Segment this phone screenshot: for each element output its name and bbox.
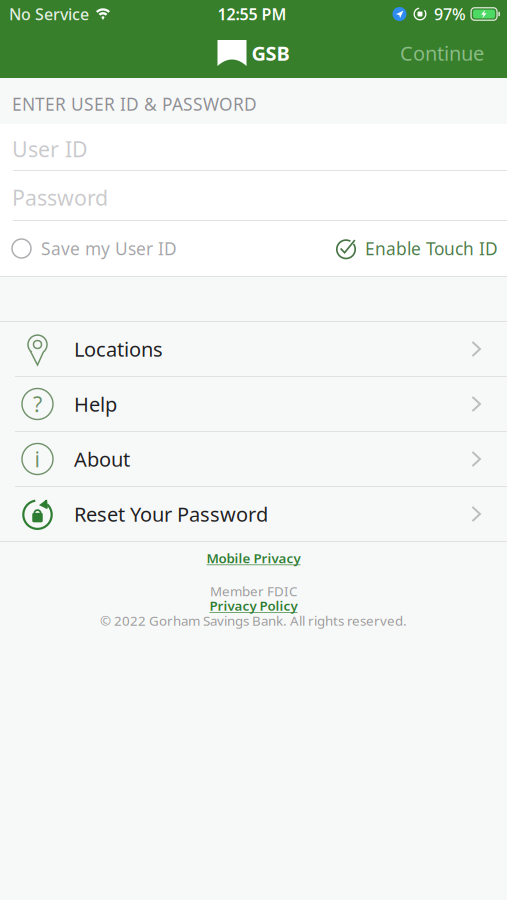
button[interactable]: Privacy Policy — [209, 598, 297, 613]
staticText: © 2022 Gorham Savings Bank. All rights r… — [100, 612, 407, 629]
staticText: Locations — [74, 336, 163, 362]
staticText: i — [34, 445, 40, 473]
staticText: Continue — [400, 40, 484, 66]
staticText: No Service — [9, 3, 89, 25]
button[interactable]: Mobile Privacy — [206, 550, 300, 566]
staticText: ENTER USER ID & PASSWORD — [12, 92, 257, 115]
staticText: Mobile Privacy — [206, 549, 300, 567]
button[interactable]: Save my User ID — [0, 221, 189, 276]
button[interactable]: Enable Touch ID — [324, 221, 507, 276]
staticText: Reset Your Password — [74, 501, 268, 527]
staticText: Enable Touch ID — [365, 237, 498, 260]
button[interactable]: i — [0, 432, 507, 487]
button[interactable]: ? — [0, 377, 507, 432]
staticText: 97% — [434, 3, 466, 25]
staticText: 12:55 PM — [217, 3, 286, 25]
staticText: Password — [12, 183, 108, 212]
staticText: Privacy Policy — [209, 597, 297, 614]
staticText: Member FDIC — [210, 582, 297, 600]
staticText: Save my User ID — [41, 237, 177, 260]
staticText: About — [74, 446, 130, 472]
button[interactable]: Continue — [389, 31, 495, 75]
staticText: GSB — [251, 40, 289, 66]
staticText: ? — [33, 390, 42, 418]
button[interactable]: Reset Your Password — [0, 487, 507, 542]
button[interactable]: Locations — [0, 322, 507, 377]
staticText: Help — [74, 391, 117, 417]
staticText: User ID — [12, 135, 88, 163]
